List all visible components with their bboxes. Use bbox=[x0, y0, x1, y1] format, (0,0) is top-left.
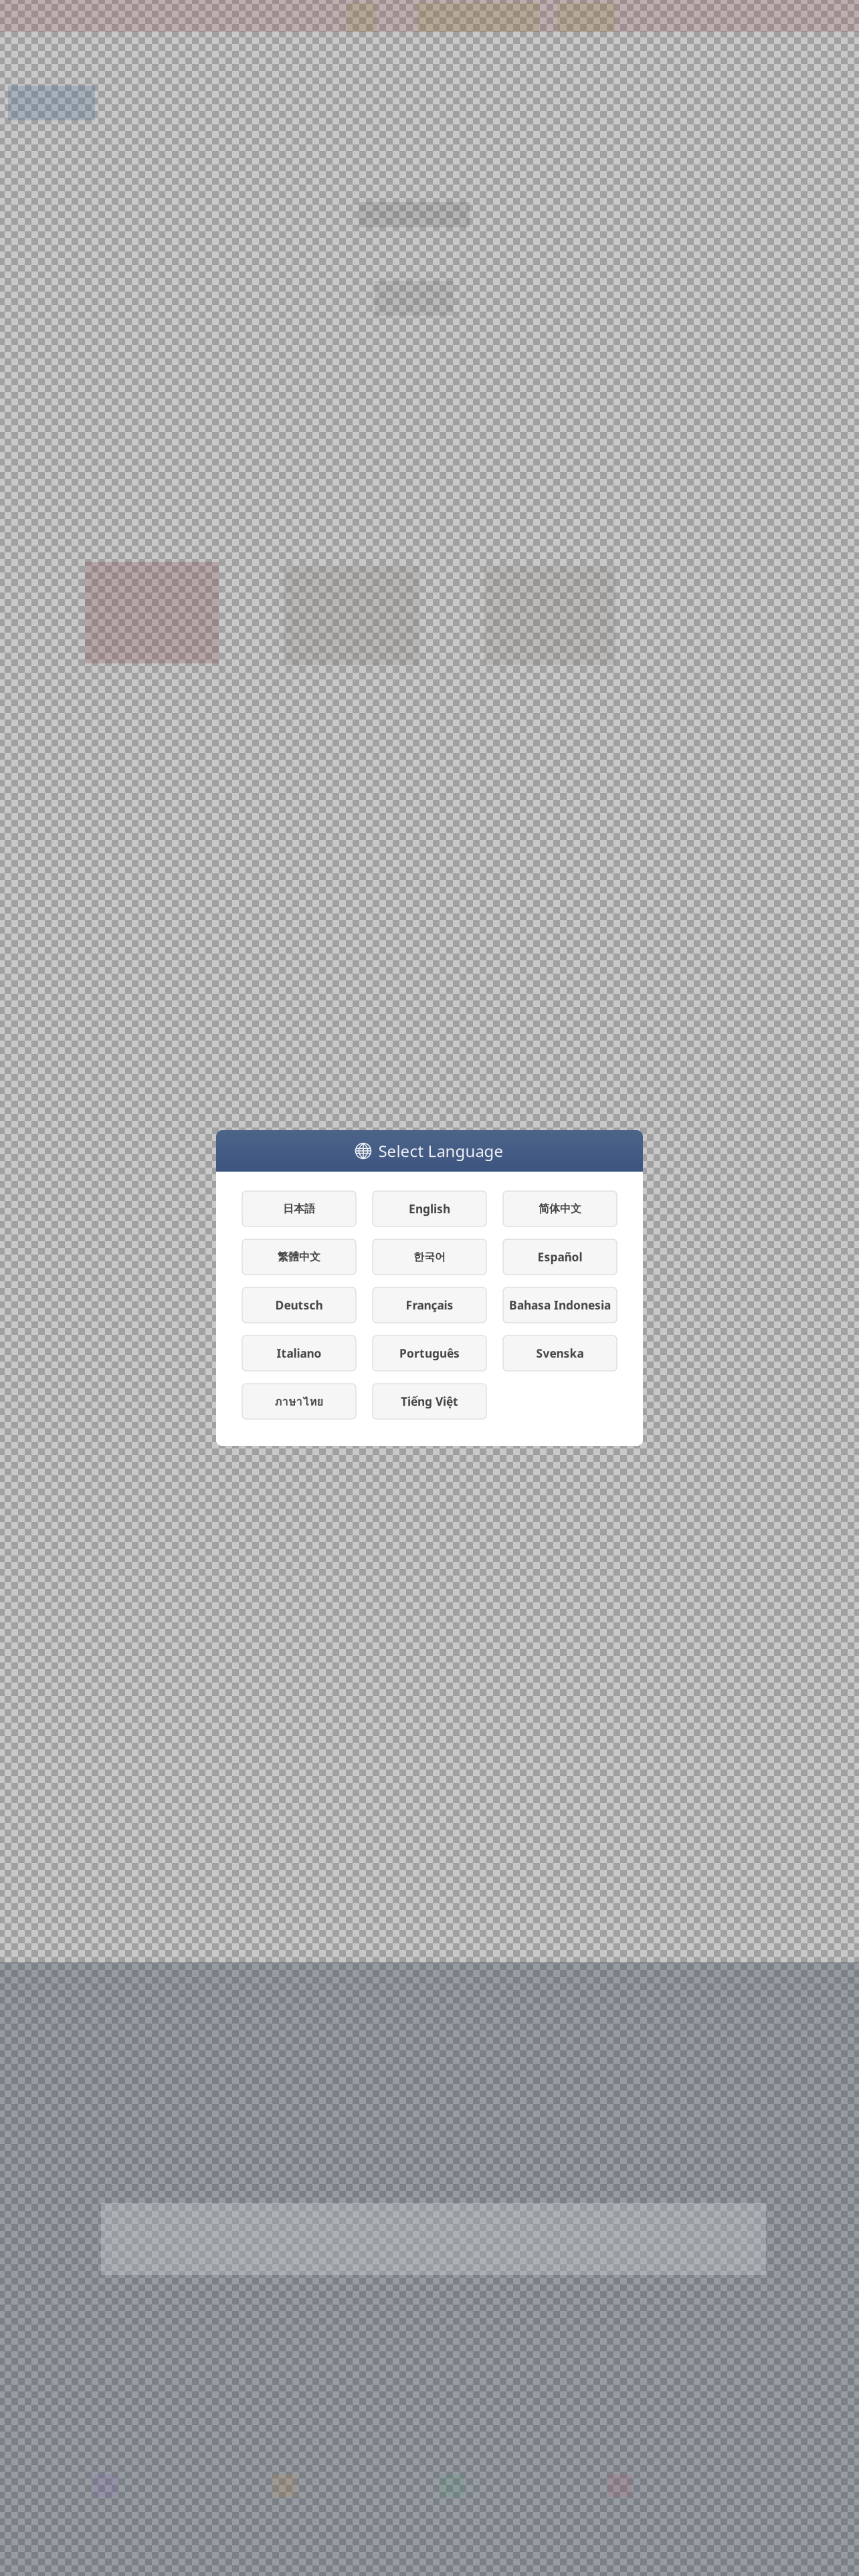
button[interactable]: Deutsch bbox=[242, 1287, 356, 1323]
staticText: Select Language bbox=[378, 1140, 503, 1162]
button[interactable]: 繁體中文 bbox=[242, 1239, 356, 1275]
staticText: Français bbox=[406, 1297, 453, 1313]
staticText: Italiano bbox=[277, 1346, 321, 1361]
staticText: Bahasa Indonesia bbox=[509, 1297, 611, 1313]
button[interactable]: Français bbox=[373, 1287, 486, 1323]
button[interactable]: 한국어 bbox=[373, 1239, 486, 1275]
staticText: 한국어 bbox=[413, 1250, 446, 1264]
staticText: ภาษาไทย bbox=[275, 1392, 323, 1410]
staticText: 繁體中文 bbox=[278, 1250, 320, 1264]
staticText: Deutsch bbox=[275, 1297, 323, 1313]
button[interactable]: Svenska bbox=[503, 1335, 617, 1371]
button[interactable]: ภาษาไทย bbox=[242, 1384, 356, 1419]
staticText: Español bbox=[538, 1249, 582, 1265]
button[interactable]: Tiếng Việt bbox=[373, 1384, 486, 1419]
staticText: Tiếng Việt bbox=[401, 1394, 458, 1409]
staticText: English bbox=[409, 1201, 450, 1216]
button[interactable]: Español bbox=[503, 1239, 617, 1275]
staticText: Svenska bbox=[536, 1346, 584, 1361]
staticText: 简体中文 bbox=[539, 1202, 581, 1215]
button[interactable]: Italiano bbox=[242, 1335, 356, 1371]
button[interactable]: 简体中文 bbox=[503, 1191, 617, 1226]
staticText: 日本語 bbox=[283, 1202, 315, 1215]
staticText: Português bbox=[399, 1346, 460, 1361]
button[interactable]: 日本語 bbox=[242, 1191, 356, 1226]
button[interactable]: Português bbox=[373, 1335, 486, 1371]
button[interactable]: English bbox=[373, 1191, 486, 1226]
button[interactable]: Bahasa Indonesia bbox=[503, 1287, 617, 1323]
